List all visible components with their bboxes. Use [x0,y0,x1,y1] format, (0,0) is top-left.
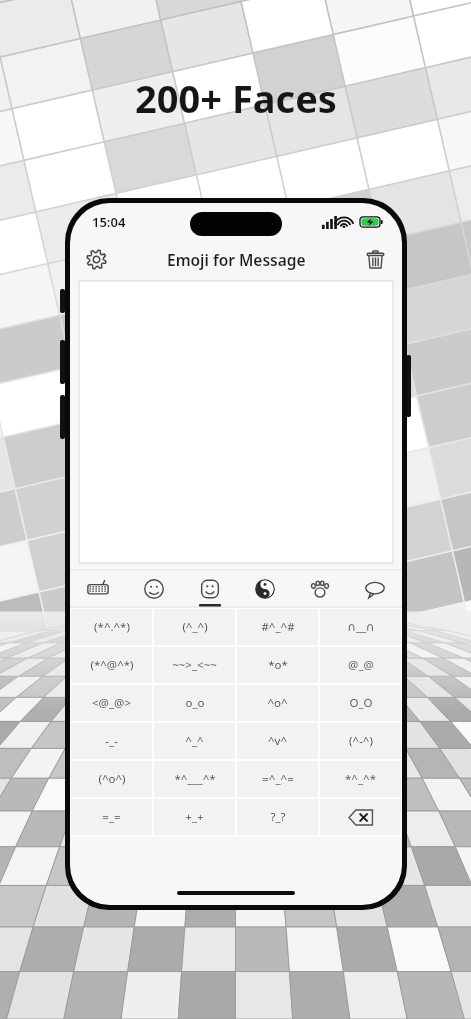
button[interactable]: *^_^* [320,761,401,797]
button[interactable]: Animals [292,571,347,607]
staticText: *^___^* [174,771,216,787]
button[interactable]: (^o^) [71,761,152,797]
staticText: +_+ [185,809,204,825]
button[interactable]: -_- [71,723,152,759]
button[interactable]: <@_@> [71,685,152,721]
button[interactable]: Backspace [320,799,401,835]
staticText: O_O [349,695,373,711]
button[interactable]: (*^@^*) [71,647,152,683]
button[interactable]: ^o^ [237,685,318,721]
button[interactable]: Faces [182,571,237,607]
button[interactable]: Symbols [237,571,292,607]
staticText: (*^.^*) [94,619,130,635]
button[interactable]: Clear [360,244,390,274]
button[interactable]: ~~>_<~~ [154,647,235,683]
staticText: @_@ [348,657,374,673]
button[interactable]: ∩__∩ [320,609,401,645]
staticText: o_o [185,695,205,711]
staticText: -_- [105,733,118,749]
staticText: (^o^) [98,771,126,787]
button[interactable]: (*^.^*) [71,609,152,645]
button[interactable]: Messages [347,571,402,607]
staticText: (*^@^*) [90,657,134,673]
button[interactable]: #^_^# [237,609,318,645]
staticText: ?_? [270,809,286,825]
staticText: =^_^= [262,771,294,787]
button[interactable]: +_+ [154,799,235,835]
button[interactable]: ^v^ [237,723,318,759]
staticText: (^-^) [349,733,373,749]
staticText: =_= [102,809,121,825]
button[interactable]: *o* [237,647,318,683]
button[interactable]: ?_? [237,799,318,835]
staticText: 15:04 [92,213,126,231]
staticText: *^_^* [345,771,376,787]
staticText: ^o^ [267,695,288,711]
staticText: 200+ Faces [135,72,337,124]
button[interactable]: (^-^) [320,723,401,759]
button[interactable]: Smileys [126,571,182,607]
staticText: #^_^# [261,619,295,635]
staticText: ~~>_<~~ [172,657,217,673]
button[interactable]: Keyboard [70,571,126,607]
button[interactable]: @_@ [320,647,401,683]
button[interactable]: (^_^) [154,609,235,645]
staticText: (^_^) [182,619,208,635]
staticText: ^_^ [185,733,204,749]
staticText: *o* [268,657,288,673]
button[interactable]: ^_^ [154,723,235,759]
staticText: Emoji for Message [167,249,306,270]
button[interactable]: O_O [320,685,401,721]
button[interactable]: *^___^* [154,761,235,797]
staticText: ^v^ [268,733,287,749]
staticText: ∩__∩ [347,619,375,635]
button[interactable]: =^_^= [237,761,318,797]
staticText: <@_@> [92,695,131,711]
button[interactable]: =_= [71,799,152,835]
button[interactable]: o_o [154,685,235,721]
button[interactable]: Settings [81,244,111,274]
